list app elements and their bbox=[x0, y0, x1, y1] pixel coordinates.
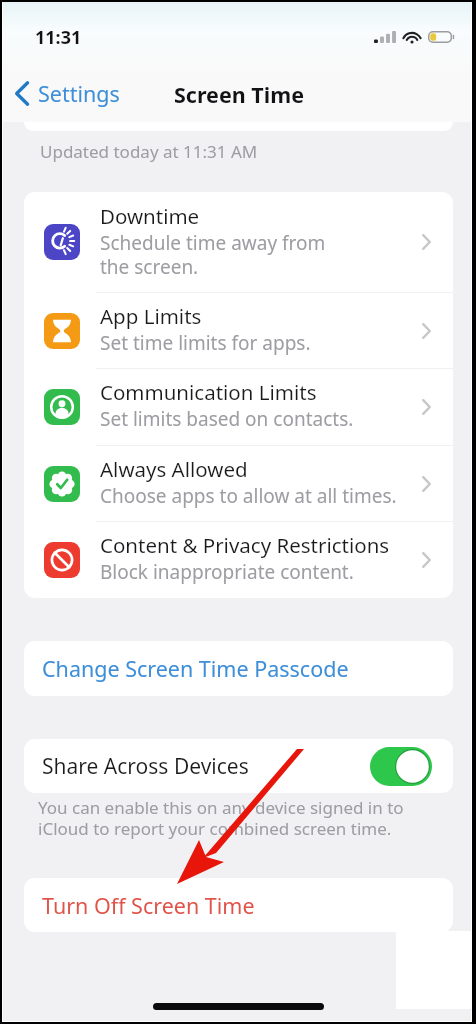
staticText: Communication Limits bbox=[100, 378, 317, 406]
button[interactable]: App Limits bbox=[24, 293, 453, 368]
staticText: Downtime bbox=[100, 202, 200, 230]
staticText: Settings bbox=[38, 79, 120, 108]
button[interactable]: Communication Limits bbox=[24, 369, 453, 445]
staticText: Schedule time away from the screen. bbox=[100, 230, 326, 279]
staticText: Turn Off Screen Time bbox=[42, 891, 255, 920]
staticText: Always Allowed bbox=[100, 455, 248, 483]
staticText: Share Across Devices bbox=[42, 752, 249, 781]
staticText: Change Screen Time Passcode bbox=[42, 654, 349, 683]
button[interactable]: Always Allowed bbox=[24, 446, 453, 521]
button[interactable]: Settings bbox=[12, 75, 123, 112]
staticText: Set limits based on contacts. bbox=[100, 406, 354, 432]
staticText: App Limits bbox=[100, 302, 202, 330]
button[interactable]: Downtime bbox=[24, 192, 453, 292]
staticText: Content & Privacy Restrictions bbox=[100, 531, 390, 559]
button[interactable]: Content & Privacy Restrictions bbox=[24, 522, 453, 598]
staticText: Block inappropriate content. bbox=[100, 559, 354, 585]
staticText: Screen Time bbox=[174, 80, 304, 109]
staticText: Choose apps to allow at all times. bbox=[100, 483, 397, 509]
button[interactable]: Turn Off Screen Time bbox=[24, 878, 453, 932]
button[interactable]: Change Screen Time Passcode bbox=[24, 641, 453, 696]
button[interactable]: Share Across Devices bbox=[24, 739, 453, 793]
staticText: Set time limits for apps. bbox=[100, 330, 311, 356]
staticText: You can enable this on any device signed… bbox=[38, 796, 404, 840]
staticText: 11:31 bbox=[35, 25, 82, 50]
staticText: Updated today at 11:31 AM bbox=[40, 140, 258, 163]
